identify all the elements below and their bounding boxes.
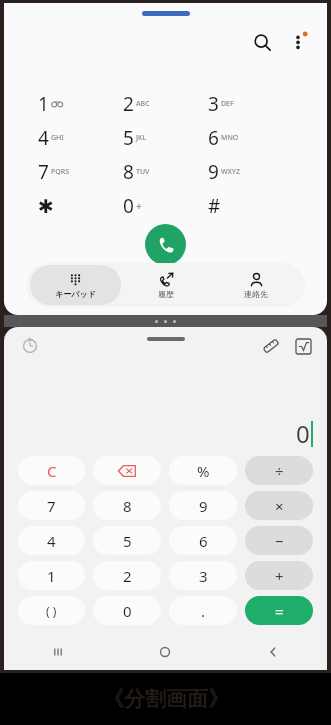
- staticText: JKL: [136, 133, 147, 143]
- staticText: 履歴: [158, 289, 174, 299]
- staticText: WXYZ: [221, 167, 240, 177]
- staticText: 0: [123, 193, 134, 218]
- staticText: 3: [199, 566, 208, 586]
- button[interactable]: 9: [208, 159, 293, 184]
- staticText: +: [136, 199, 142, 213]
- staticText: ✱: [38, 195, 54, 217]
- staticText: MNO: [221, 133, 239, 143]
- staticText: %: [197, 461, 210, 481]
- button[interactable]: ×: [245, 491, 313, 520]
- button[interactable]: Recent apps: [4, 634, 111, 670]
- staticText: =: [275, 601, 284, 621]
- button[interactable]: 7: [38, 159, 123, 184]
- button[interactable]: 6: [208, 125, 293, 150]
- button[interactable]: #: [208, 193, 293, 218]
- staticText: TUV: [136, 167, 150, 177]
- button[interactable]: 7: [18, 491, 85, 520]
- button[interactable]: .: [169, 596, 237, 625]
- staticText: #: [208, 193, 221, 218]
- staticText: 2: [123, 91, 134, 116]
- staticText: C: [47, 461, 57, 481]
- button[interactable]: −: [245, 526, 313, 555]
- button[interactable]: Unit converter: [257, 332, 285, 360]
- button[interactable]: Home: [111, 634, 219, 670]
- button[interactable]: +: [245, 561, 313, 590]
- staticText: PQRS: [51, 167, 70, 177]
- staticText: DEF: [221, 99, 234, 109]
- button[interactable]: History: [16, 332, 44, 360]
- staticText: −: [275, 531, 284, 551]
- staticText: ×: [275, 496, 284, 516]
- staticText: 0: [123, 601, 132, 621]
- staticText: +: [275, 566, 284, 586]
- button[interactable]: [93, 456, 161, 485]
- button[interactable]: 1: [38, 91, 123, 116]
- staticText: 8: [123, 496, 132, 516]
- staticText: 4: [38, 125, 49, 150]
- button[interactable]: %: [169, 456, 237, 485]
- button[interactable]: ( ): [18, 596, 85, 625]
- staticText: 5: [123, 531, 132, 551]
- button[interactable]: 0: [123, 193, 208, 218]
- staticText: 2: [123, 566, 132, 586]
- button[interactable]: 3: [208, 91, 293, 116]
- staticText: 8: [123, 159, 134, 184]
- button[interactable]: 2: [93, 561, 161, 590]
- button[interactable]: 1: [18, 561, 85, 590]
- button[interactable]: C: [18, 456, 85, 485]
- button[interactable]: 0: [93, 596, 161, 625]
- button[interactable]: Scientific calculator: [289, 332, 317, 360]
- staticText: 1: [38, 91, 49, 116]
- button[interactable]: 8: [123, 159, 208, 184]
- staticText: GHI: [51, 133, 64, 143]
- staticText: 9: [208, 159, 219, 184]
- button[interactable]: 履歴: [121, 265, 211, 305]
- button[interactable]: 8: [93, 491, 161, 520]
- button[interactable]: 9: [169, 491, 237, 520]
- staticText: 1: [47, 566, 56, 586]
- staticText: 0: [296, 417, 310, 450]
- button[interactable]: Call: [145, 224, 186, 265]
- button[interactable]: 3: [169, 561, 237, 590]
- button[interactable]: Back: [219, 634, 327, 670]
- staticText: 6: [208, 125, 219, 150]
- button[interactable]: 4: [18, 526, 85, 555]
- staticText: ÷: [275, 461, 284, 481]
- staticText: 4: [47, 531, 56, 551]
- staticText: 《分割画面》: [103, 686, 229, 712]
- staticText: 7: [38, 159, 49, 184]
- button[interactable]: =: [245, 596, 313, 625]
- button[interactable]: Search: [245, 25, 279, 59]
- button[interactable]: 2: [123, 91, 208, 116]
- staticText: 7: [47, 496, 56, 516]
- staticText: 連絡先: [244, 289, 268, 299]
- staticText: キーパッド: [55, 289, 96, 299]
- staticText: ( ): [46, 603, 57, 619]
- staticText: 3: [208, 91, 219, 116]
- staticText: 9: [199, 496, 208, 516]
- button[interactable]: 5: [93, 526, 161, 555]
- staticText: .: [201, 601, 206, 621]
- staticText: 5: [123, 125, 134, 150]
- button[interactable]: More options: [281, 25, 315, 59]
- button[interactable]: 4: [38, 125, 123, 150]
- button[interactable]: 連絡先: [211, 265, 301, 305]
- button[interactable]: ✱: [38, 193, 123, 218]
- staticText: ABC: [136, 99, 150, 109]
- button[interactable]: ÷: [245, 456, 313, 485]
- button[interactable]: キーパッド: [30, 265, 121, 305]
- button[interactable]: 5: [123, 125, 208, 150]
- button[interactable]: 6: [169, 526, 237, 555]
- staticText: 6: [199, 531, 208, 551]
